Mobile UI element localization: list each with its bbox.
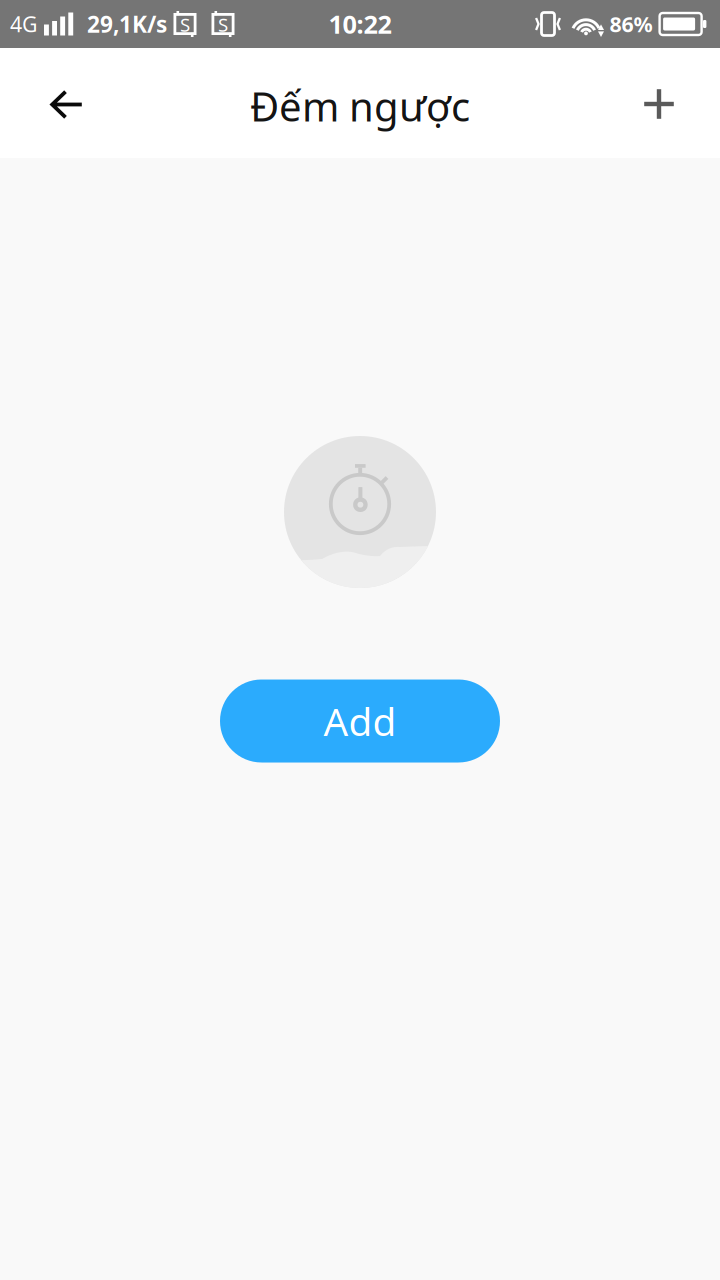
- staticText: 10:22: [328, 7, 391, 41]
- staticText: 4G: [10, 10, 38, 38]
- staticText: 29,1K/s: [87, 9, 167, 39]
- button[interactable]: Add: [220, 679, 500, 762]
- staticText: Đếm ngược: [250, 79, 470, 132]
- button[interactable]: Add countdown: [609, 49, 709, 159]
- staticText: S: [218, 12, 228, 37]
- button[interactable]: Back: [17, 49, 117, 159]
- staticText: Add: [323, 695, 396, 747]
- staticText: 86%: [609, 10, 652, 38]
- staticText: S: [180, 12, 190, 37]
